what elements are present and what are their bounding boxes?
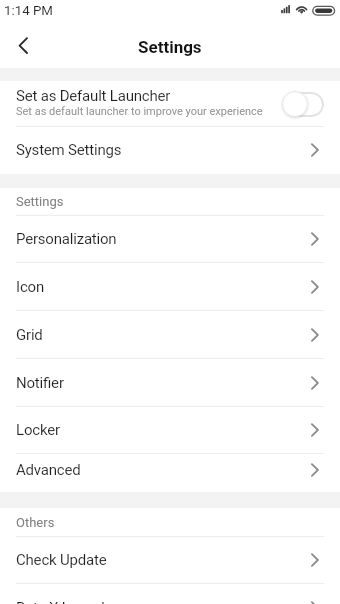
button[interactable] — [282, 91, 324, 117]
staticText: Grid — [16, 326, 43, 344]
staticText: Advanced — [16, 461, 81, 479]
staticText: 1:14 PM — [4, 3, 53, 19]
button[interactable] — [8, 31, 40, 63]
button[interactable]: Personalization — [0, 216, 340, 262]
staticText: Settings — [138, 37, 202, 57]
button[interactable]: Advanced — [0, 454, 340, 492]
staticText: Rate X Launcher — [16, 599, 123, 604]
button[interactable]: Check Update — [0, 537, 340, 583]
button[interactable]: Rate X Launcher — [0, 584, 340, 604]
staticText: Notifier — [16, 374, 64, 392]
staticText: System Settings — [16, 141, 122, 159]
staticText: Set as default launcher to improve your … — [16, 105, 263, 118]
button[interactable]: Notifier — [0, 359, 340, 406]
button[interactable]: Locker — [0, 407, 340, 453]
staticText: Icon — [16, 278, 44, 296]
staticText: Settings — [16, 194, 64, 209]
staticText: Locker — [16, 421, 60, 439]
button[interactable]: Icon — [0, 263, 340, 310]
staticText: Check Update — [16, 551, 107, 569]
staticText: Personalization — [16, 230, 117, 248]
button[interactable]: System Settings — [0, 127, 340, 174]
staticText: Set as Default Launcher — [16, 87, 171, 105]
staticText: Others — [16, 515, 55, 530]
button[interactable]: Set as Default Launcher — [0, 81, 340, 126]
button[interactable]: Grid — [0, 311, 340, 358]
